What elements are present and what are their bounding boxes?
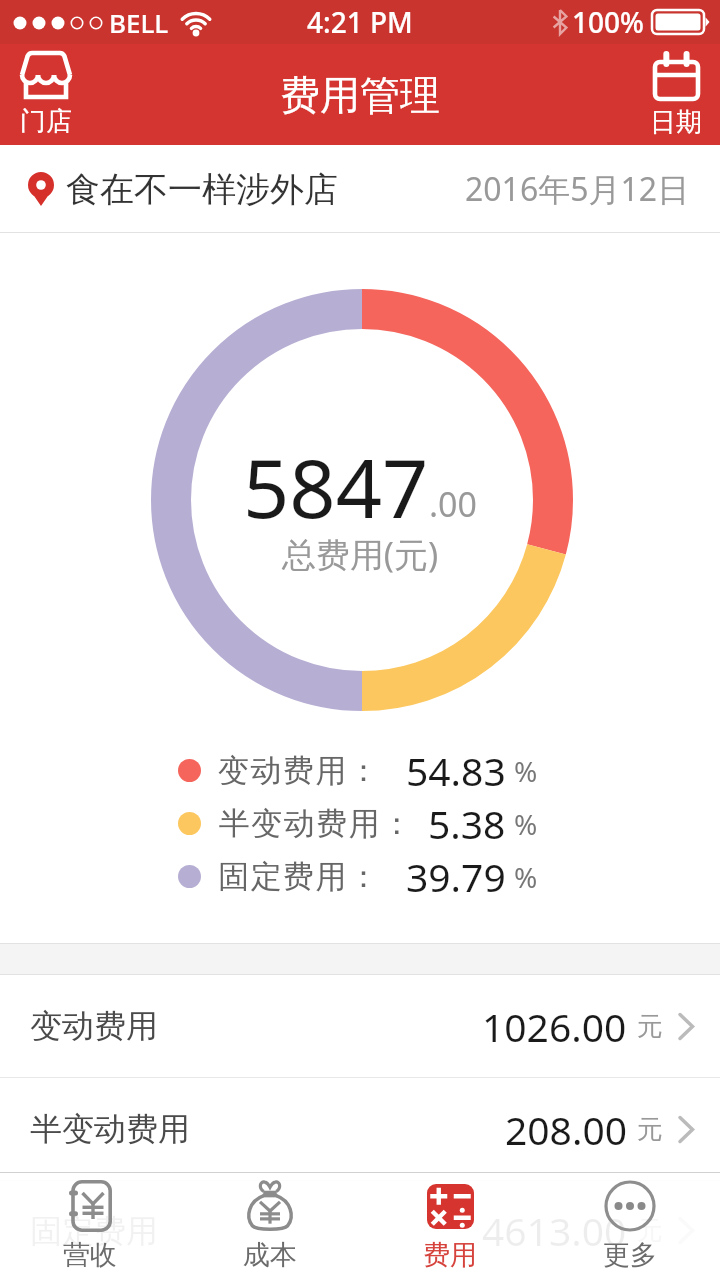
staticText: BELL	[109, 5, 169, 40]
staticText: %	[514, 752, 538, 790]
staticText: 4:21 PM	[307, 3, 413, 41]
staticText: 变动费用	[30, 1006, 158, 1046]
staticText: 39.79	[406, 850, 506, 903]
staticText: 食在不一样涉外店	[66, 168, 338, 211]
staticText: 元	[637, 1010, 663, 1043]
staticText: 半变动费用	[30, 1109, 190, 1149]
button[interactable]: 半变动费用	[0, 1078, 720, 1180]
staticText: 半变动费用：	[218, 804, 413, 843]
staticText: 总费用(元)	[0, 531, 720, 577]
staticText: 费用	[423, 1238, 477, 1272]
staticText: 2016年5月12日	[465, 167, 690, 211]
staticText: 更多	[603, 1238, 657, 1272]
staticText: 变动费用：	[218, 751, 381, 790]
staticText: 54.83	[406, 744, 506, 797]
button[interactable]: 费用	[360, 1172, 540, 1280]
button[interactable]: 更多	[540, 1172, 720, 1280]
staticText: 元	[637, 1113, 663, 1146]
staticText: %	[514, 858, 538, 896]
staticText: 208.00	[505, 1103, 627, 1156]
staticText: .00	[429, 481, 478, 527]
staticText: 1026.00	[482, 1000, 627, 1053]
staticText: 4613.00	[482, 1204, 627, 1257]
staticText: 元	[637, 1214, 663, 1247]
staticText: 日期	[650, 106, 702, 139]
button[interactable]: 门店	[20, 51, 72, 138]
staticText: 营收	[63, 1238, 117, 1272]
staticText: 固定费用	[30, 1211, 158, 1251]
staticText: %	[514, 805, 538, 843]
staticText: 5.38	[428, 797, 506, 850]
button[interactable]: 营收	[0, 1172, 180, 1280]
button[interactable]: 变动费用	[0, 975, 720, 1077]
button[interactable]: 固定费用	[0, 1181, 720, 1280]
staticText: 固定费用：	[218, 857, 381, 896]
staticText: 5847	[243, 431, 429, 541]
button[interactable]: 日期	[650, 51, 702, 139]
staticText: 门店	[20, 105, 72, 138]
staticText: 100%	[572, 3, 644, 41]
button[interactable]: 成本	[180, 1172, 360, 1280]
button[interactable]: 食在不一样涉外店	[0, 145, 720, 233]
staticText: 成本	[243, 1238, 297, 1272]
staticText: 费用管理	[280, 70, 440, 120]
